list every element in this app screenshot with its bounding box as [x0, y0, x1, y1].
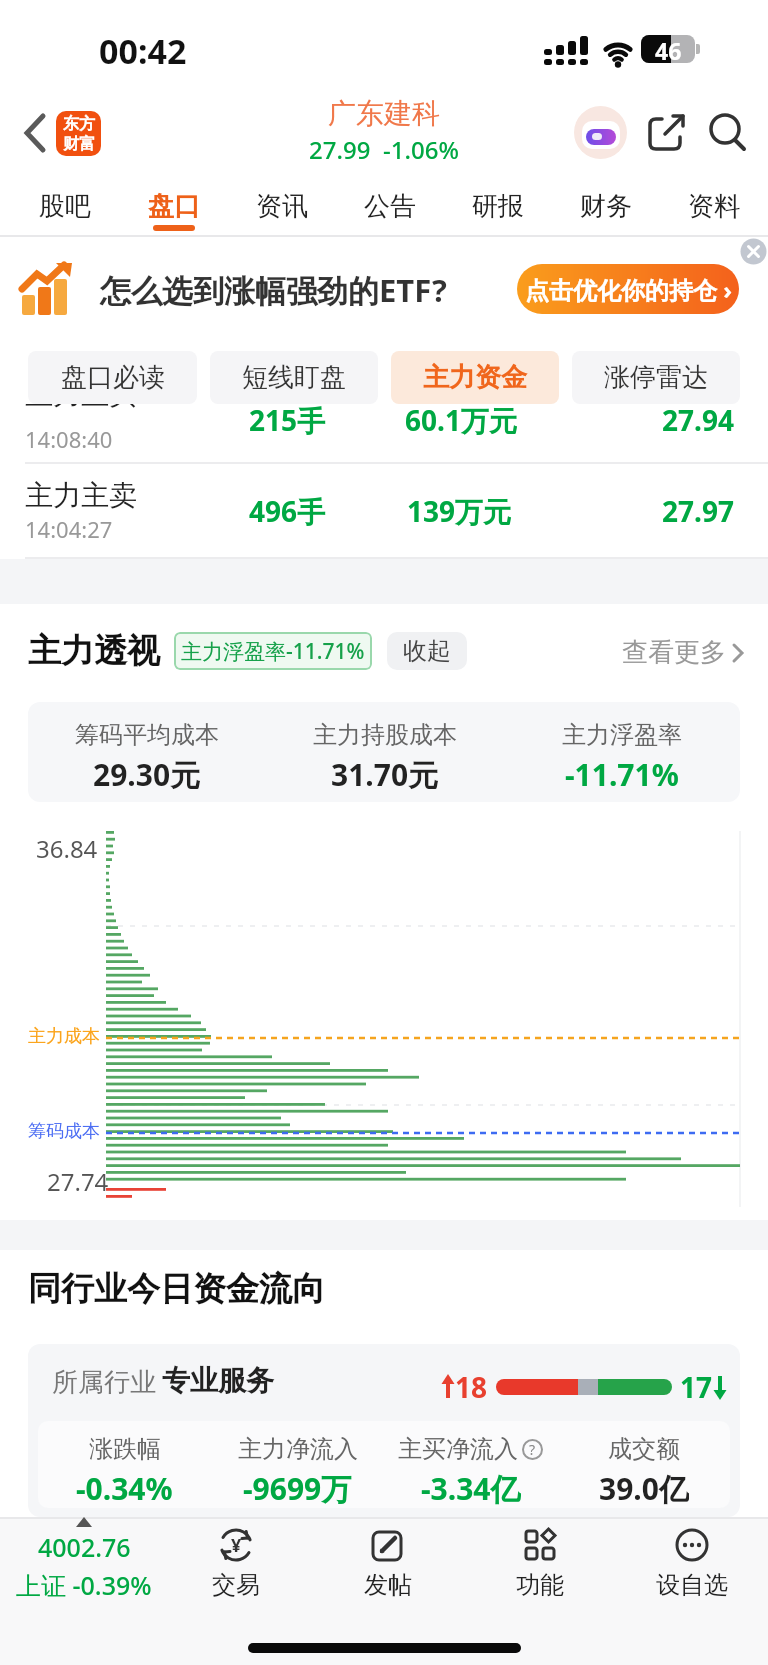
button[interactable]: 盘口必读	[28, 351, 197, 404]
button[interactable]: 4002.76	[8, 1517, 160, 1602]
button[interactable]: 东方	[56, 111, 101, 156]
staticText: -3.34亿	[421, 1468, 521, 1508]
staticText: 60.1万元	[405, 404, 517, 439]
staticText: 29.30元	[93, 754, 201, 795]
button[interactable]: 财务	[552, 175, 660, 237]
staticText: 27.99	[309, 133, 371, 166]
staticText: -0.34%	[76, 1468, 173, 1508]
button[interactable]	[648, 113, 688, 153]
staticText: 收起	[403, 636, 451, 666]
staticText: 同行业今日资金流向	[28, 1268, 325, 1310]
staticText: 广东建科	[328, 96, 440, 131]
staticText: 短线盯盘	[242, 361, 346, 394]
staticText: 主力主卖	[25, 478, 137, 513]
button[interactable]: 主力主买	[0, 404, 768, 464]
staticText: 主力透视	[28, 630, 160, 672]
button[interactable]: 主力浮盈率-11.71%	[174, 632, 372, 670]
button[interactable]: 研报	[444, 175, 552, 237]
staticText: 主力持股成本	[313, 720, 457, 750]
staticText: 主力浮盈率-11.71%	[181, 637, 365, 666]
staticText: 27.97	[662, 492, 734, 530]
button[interactable]: 主力主卖	[0, 464, 768, 559]
staticText: -1.06%	[383, 133, 459, 166]
staticText: 36.84	[36, 832, 98, 865]
staticText: 31.70元	[331, 754, 439, 795]
button[interactable]: 点击优化你的持仓 ›	[517, 264, 739, 314]
staticText: 215手	[249, 404, 326, 439]
staticText: 上证 -0.39%	[16, 1568, 152, 1602]
staticText: 设自选	[656, 1570, 728, 1600]
staticText: 研报	[472, 190, 524, 223]
staticText: ?	[529, 1440, 536, 1459]
staticText: 筹码平均成本	[75, 720, 219, 750]
staticText: 主力主买	[25, 404, 137, 412]
staticText: 发帖	[364, 1570, 412, 1600]
staticText: 财务	[580, 190, 632, 223]
staticText: 46	[655, 35, 682, 63]
staticText: 公告	[364, 190, 416, 223]
staticText: 成交额	[608, 1434, 680, 1464]
staticText: 所属行业	[52, 1366, 156, 1399]
staticText: 主买净流入	[398, 1434, 518, 1464]
button[interactable]: ¥	[176, 1527, 296, 1600]
staticText: -11.71%	[565, 754, 679, 795]
staticText: 交易	[212, 1570, 260, 1600]
button[interactable]: 涨停雷达	[572, 351, 740, 404]
staticText: 18	[455, 1368, 488, 1406]
button[interactable]	[574, 106, 627, 159]
staticText: 功能	[516, 1570, 564, 1600]
staticText: 主力资金	[423, 361, 527, 394]
button[interactable]: 短线盯盘	[210, 351, 378, 404]
staticText: 主力浮盈率	[562, 720, 682, 750]
button[interactable]: 功能	[480, 1527, 600, 1600]
staticText: 财富	[63, 134, 95, 154]
button[interactable]: 怎么选到涨幅强劲的ETF?	[0, 237, 768, 340]
staticText: 涨跌幅	[89, 1434, 161, 1464]
staticText: 00:42	[99, 28, 187, 74]
staticText: 39.0亿	[599, 1468, 689, 1508]
staticText: 东方	[63, 114, 95, 134]
button[interactable]: 收起	[387, 632, 467, 670]
button[interactable]	[708, 113, 748, 153]
staticText: 14:08:40	[25, 424, 113, 454]
staticText: 主力净流入	[238, 1434, 358, 1464]
staticText: 资料	[688, 190, 740, 223]
button[interactable]: 股吧	[10, 175, 119, 237]
staticText: 139万元	[407, 492, 512, 530]
staticText: 盘口必读	[61, 361, 165, 394]
staticText: 怎么选到涨幅强劲的ETF?	[100, 269, 447, 311]
button[interactable]	[740, 238, 767, 265]
staticText: 涨停雷达	[604, 361, 708, 394]
button[interactable]: 设自选	[632, 1527, 752, 1600]
staticText: 股吧	[39, 190, 91, 223]
button[interactable]	[24, 113, 46, 153]
button[interactable]: 盘口	[119, 175, 228, 237]
staticText: 盘口	[148, 190, 200, 223]
button[interactable]: 资料	[660, 175, 768, 237]
staticText: 筹码成本	[28, 1120, 100, 1143]
staticText: -9699万	[243, 1468, 352, 1508]
staticText: 27.74	[47, 1165, 109, 1198]
button[interactable]: 资讯	[228, 175, 336, 237]
staticText: 14:04:27	[25, 514, 113, 544]
staticText: 点击优化你的持仓 ›	[525, 273, 732, 306]
staticText: 主力成本	[28, 1025, 100, 1048]
staticText: 资讯	[256, 190, 308, 223]
button[interactable]: 查看更多	[622, 636, 744, 669]
button[interactable]: 发帖	[328, 1527, 448, 1600]
button[interactable]: 公告	[336, 175, 444, 237]
button[interactable]: 主力资金	[391, 351, 559, 404]
staticText: 17	[680, 1368, 713, 1406]
staticText: 专业服务	[162, 1363, 274, 1398]
staticText: 27.94	[662, 404, 734, 439]
staticText: 496手	[249, 492, 326, 530]
staticText: 查看更多	[622, 636, 726, 669]
staticText: ¥	[231, 1533, 242, 1558]
staticText: 4002.76	[38, 1530, 131, 1564]
